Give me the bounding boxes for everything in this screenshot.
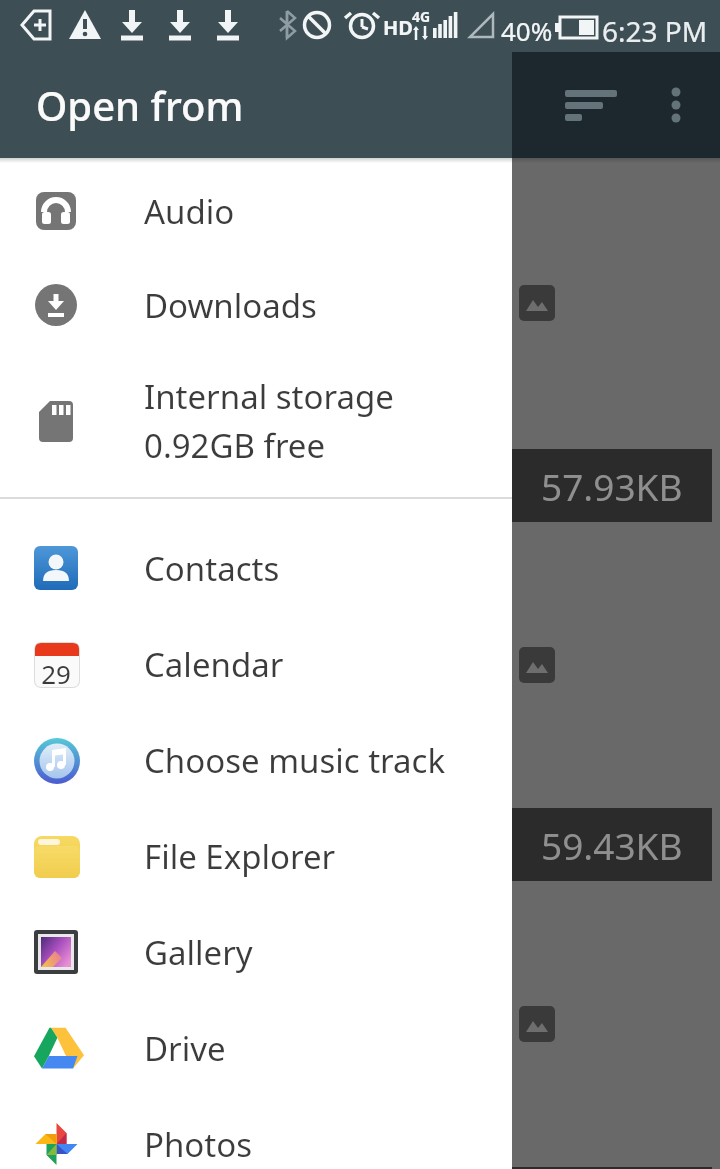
staticText: Internal storage bbox=[144, 374, 394, 419]
staticText: Contacts bbox=[144, 546, 280, 591]
button[interactable]: Choose music track bbox=[0, 712, 512, 808]
button[interactable]: File Explorer bbox=[0, 808, 512, 904]
staticText: Photos bbox=[144, 1122, 253, 1167]
staticText: 4G bbox=[412, 7, 431, 26]
staticText: HD bbox=[383, 14, 413, 41]
staticText: 59.43KB bbox=[541, 820, 683, 870]
button[interactable]: Contacts bbox=[0, 520, 512, 616]
button[interactable]: Drive bbox=[0, 1000, 512, 1096]
button[interactable]: Downloads bbox=[0, 258, 512, 352]
staticText: Open from bbox=[36, 78, 244, 132]
staticText: Audio bbox=[144, 189, 235, 234]
button[interactable]: Internal storage bbox=[0, 352, 512, 489]
button[interactable]: Gallery bbox=[0, 904, 512, 1000]
button[interactable]: 29 bbox=[0, 616, 512, 712]
button[interactable]: Audio bbox=[0, 164, 512, 258]
staticText: 0.92GB free bbox=[144, 423, 326, 468]
staticText: Drive bbox=[144, 1026, 226, 1071]
staticText: 40% bbox=[501, 13, 553, 48]
staticText: Downloads bbox=[144, 283, 317, 328]
staticText: File Explorer bbox=[144, 834, 336, 879]
staticText: 6:23 PM bbox=[602, 12, 708, 50]
staticText: Choose music track bbox=[144, 738, 446, 783]
staticText: Calendar bbox=[144, 642, 284, 687]
staticText: 29 bbox=[34, 656, 78, 691]
button[interactable]: Photos bbox=[0, 1096, 512, 1169]
staticText: Gallery bbox=[144, 930, 253, 975]
staticText: 57.93KB bbox=[541, 461, 683, 511]
